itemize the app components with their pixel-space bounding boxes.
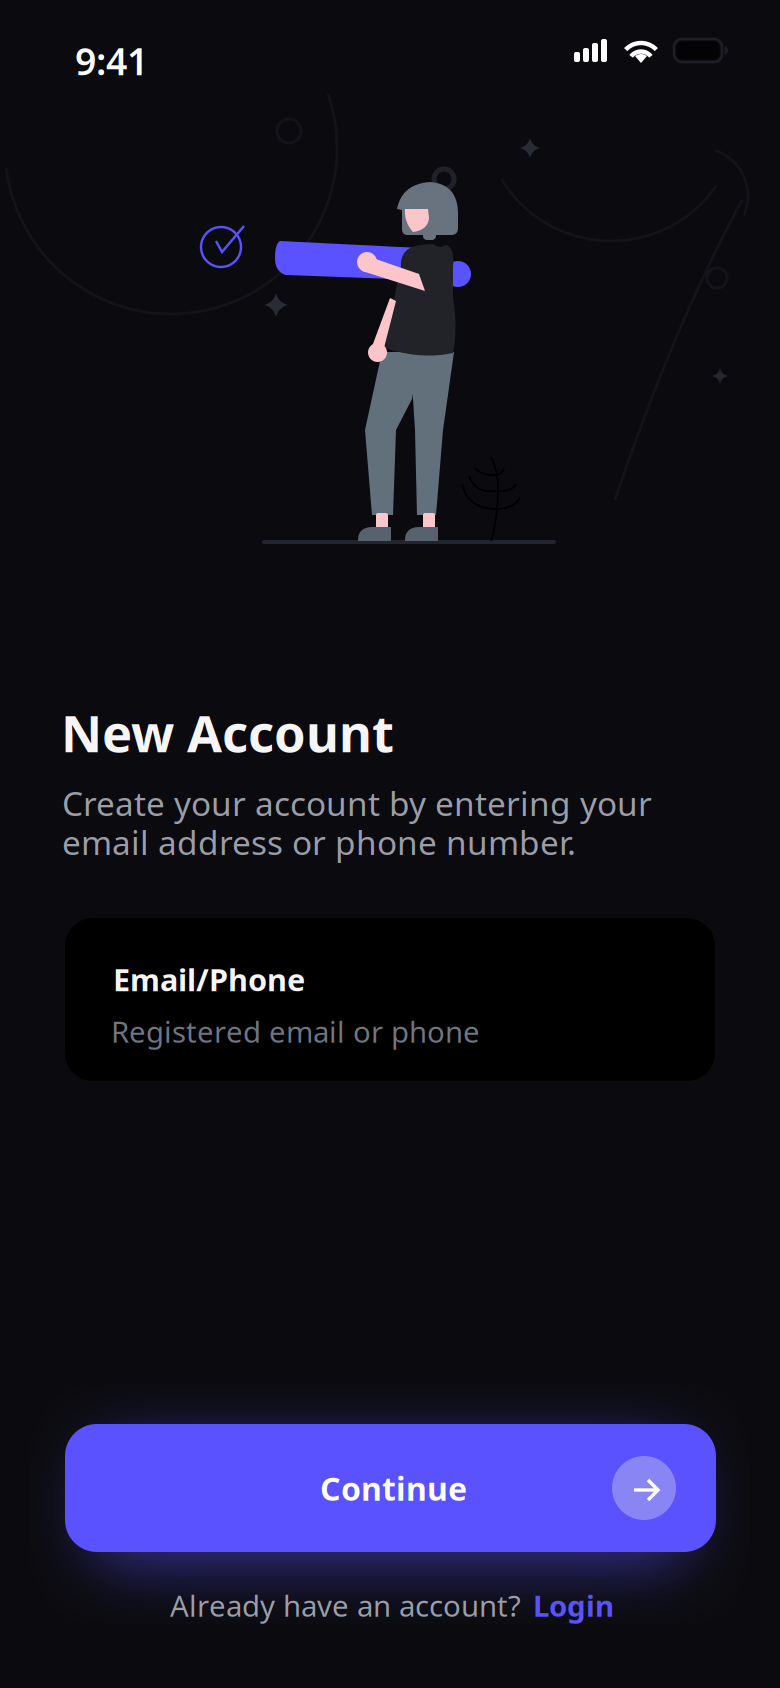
staticText: Continue: [320, 1467, 467, 1509]
button[interactable]: Continue: [65, 1424, 716, 1552]
staticText: 9:41: [75, 36, 148, 86]
staticText: Login: [533, 1586, 614, 1625]
staticText: New Account: [61, 699, 394, 766]
button[interactable]: Already have an account?: [152, 1572, 632, 1639]
staticText: Already have an account?: [170, 1586, 521, 1625]
staticText: Create your account by entering your: [62, 781, 652, 825]
staticText: Registered email or phone: [111, 1012, 480, 1051]
staticText: email address or phone number.: [62, 820, 576, 864]
staticText: Email/Phone: [113, 959, 305, 1000]
